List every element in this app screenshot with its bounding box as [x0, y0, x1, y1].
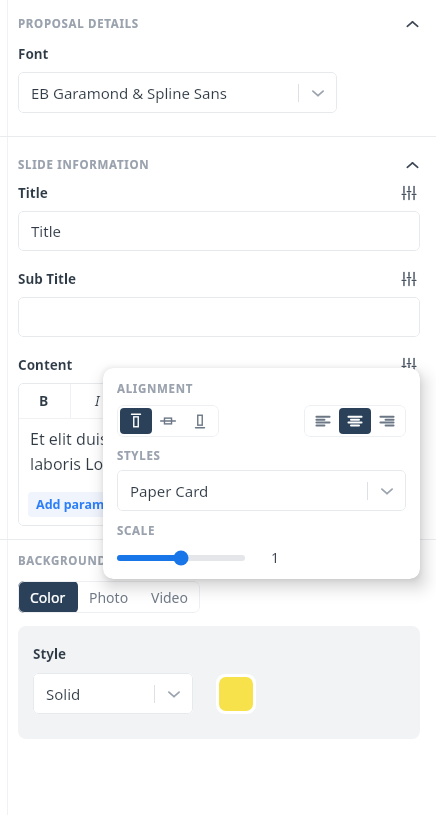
staticText: Color: [30, 588, 66, 607]
button[interactable]: [18, 297, 420, 337]
staticText: 1: [271, 548, 280, 567]
staticText: ALIGNMENT: [117, 381, 194, 397]
button[interactable]: Color: [18, 581, 78, 613]
staticText: Content: [18, 356, 73, 374]
button[interactable]: U: [124, 383, 176, 418]
button[interactable]: Add parameter: [28, 492, 139, 517]
button[interactable]: Text alignment 1: [307, 408, 339, 434]
button[interactable]: I: [71, 383, 123, 418]
staticText: I: [95, 391, 100, 410]
button[interactable]: Solid: [33, 673, 193, 714]
button[interactable]: Text formatting options: [398, 182, 420, 204]
button[interactable]: SLIDE INFORMATION: [0, 148, 436, 182]
button[interactable]: Text alignment 3: [371, 408, 403, 434]
staticText: EB Garamond & Spline Sans: [31, 83, 298, 103]
staticText: Title: [31, 221, 61, 241]
button[interactable]: EB Garamond & Spline Sans: [18, 72, 337, 113]
staticText: STYLES: [117, 448, 161, 464]
button[interactable]: Vertical alignment 3: [184, 408, 216, 434]
staticText: SCALE: [117, 523, 156, 539]
staticText: Solid: [46, 684, 154, 704]
staticText: Font: [18, 45, 49, 63]
staticText: PROPOSAL DETAILS: [18, 16, 139, 32]
button[interactable]: Vertical alignment 1: [120, 408, 152, 434]
button[interactable]: Text alignment 2: [339, 408, 371, 434]
button[interactable]: Paper Card: [117, 470, 406, 511]
button[interactable]: Video: [139, 581, 200, 613]
staticText: BACKGROUND: [18, 553, 107, 569]
button[interactable]: Photo: [78, 581, 139, 613]
button[interactable]: Text formatting options: [398, 354, 420, 376]
other: Collapse SLIDE INFORMATION: [402, 155, 422, 175]
staticText: Paper Card: [130, 481, 367, 501]
button[interactable]: Vertical alignment 2: [152, 408, 184, 434]
staticText: SLIDE INFORMATION: [18, 157, 150, 173]
staticText: Add parameter: [36, 496, 131, 513]
staticText: Video: [151, 588, 188, 607]
staticText: Style: [33, 645, 67, 663]
button[interactable]: PROPOSAL DETAILS: [0, 7, 436, 41]
staticText: B: [39, 391, 49, 410]
other: Collapse PROPOSAL DETAILS: [402, 14, 422, 34]
staticText: U: [145, 391, 156, 410]
button[interactable]: Title: [18, 211, 420, 251]
button[interactable]: Text formatting options: [398, 268, 420, 290]
staticText: Et elit duis aliqua officia laboris Lore…: [30, 428, 208, 474]
staticText: Sub Title: [18, 270, 77, 288]
staticText: Title: [18, 184, 48, 202]
button[interactable]: Background colour swatch: [219, 677, 253, 711]
button[interactable]: B: [18, 383, 70, 418]
button[interactable]: Scale slider: [117, 549, 245, 567]
staticText: Photo: [89, 588, 129, 607]
